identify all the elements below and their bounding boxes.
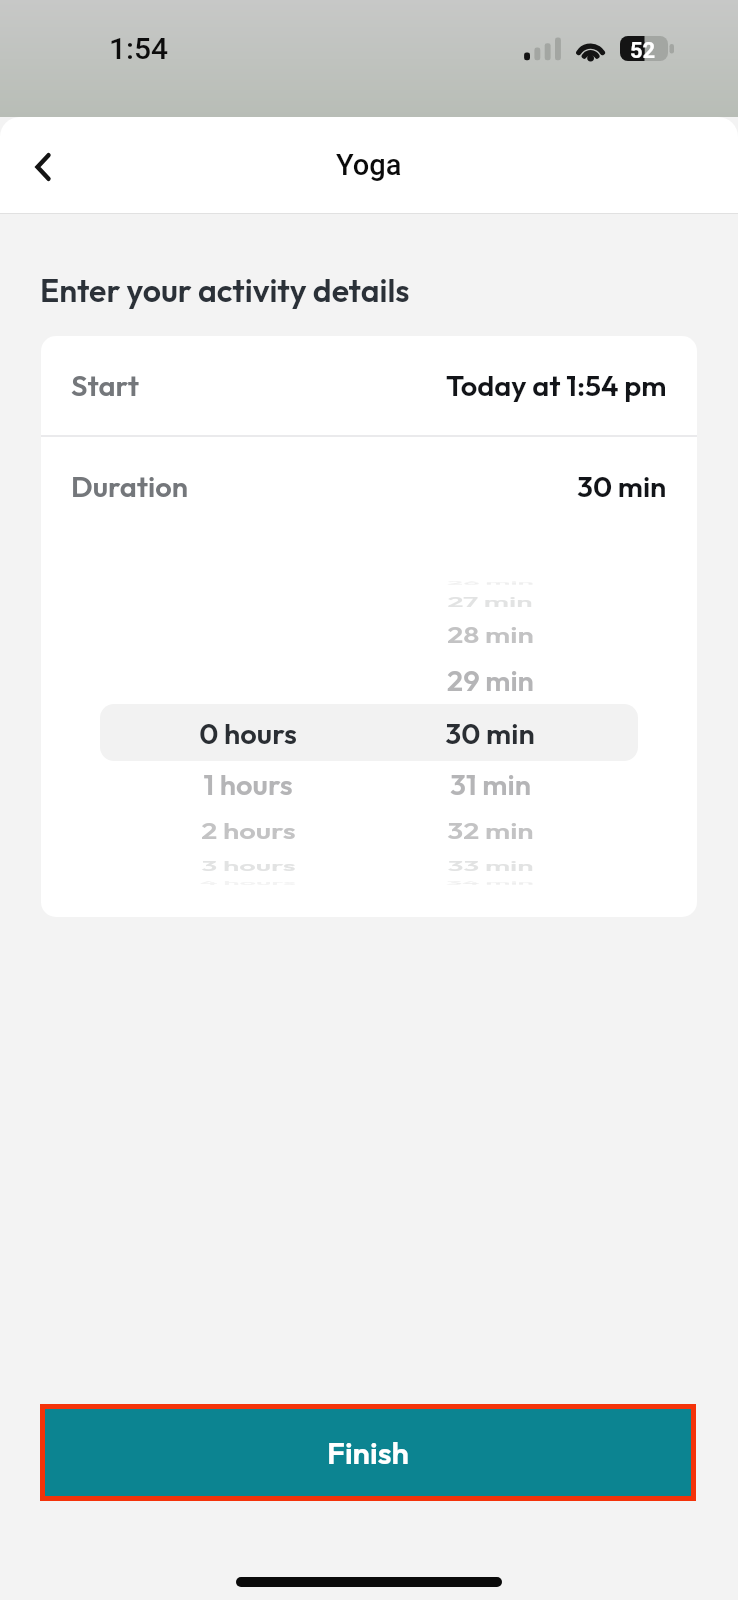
button[interactable]: 28 min	[360, 615, 620, 655]
staticText: Finish	[327, 1433, 409, 1472]
staticText: Today at 1:54 pm	[446, 367, 667, 404]
staticText: Enter your activity details	[40, 270, 410, 310]
staticText: 4 hours	[200, 880, 296, 886]
button[interactable]: 27 min	[360, 588, 620, 614]
button[interactable]: 1 hours	[118, 761, 378, 809]
staticText: 52	[630, 38, 656, 64]
staticText: 26 min	[447, 580, 534, 586]
button[interactable]: 31 min	[360, 761, 620, 809]
staticText: 3 hours	[201, 856, 296, 874]
staticText: 32 min	[447, 817, 534, 845]
staticText: 28 min	[447, 621, 534, 649]
staticText: 1:54	[109, 31, 169, 66]
button[interactable]: Back	[10, 134, 76, 200]
staticText: 29 min	[447, 664, 534, 699]
button[interactable]: 30 min	[360, 707, 620, 759]
button[interactable]: 35 min	[360, 881, 620, 884]
button[interactable]: 25 min	[360, 581, 620, 584]
button[interactable]: 33 min	[360, 852, 620, 878]
button[interactable]: Duration	[41, 437, 697, 536]
button[interactable]: 32 min	[360, 811, 620, 851]
staticText: 31 min	[450, 768, 531, 803]
staticText: Duration	[71, 468, 188, 505]
staticText: Yoga	[336, 148, 402, 182]
staticText: 25 min	[447, 582, 534, 584]
staticText: 33 min	[447, 856, 534, 874]
staticText: 27 min	[447, 592, 533, 610]
staticText: 34 min	[446, 880, 534, 886]
staticText: Start	[71, 367, 139, 404]
button[interactable]: Start	[41, 336, 697, 435]
staticText: 1 hours	[203, 768, 293, 803]
staticText: 0 hours	[199, 715, 297, 752]
staticText: 2 hours	[201, 817, 296, 845]
button[interactable]: 3 hours	[118, 852, 378, 878]
button[interactable]: 0 hours	[118, 707, 378, 759]
button[interactable]: 29 min	[360, 657, 620, 705]
button[interactable]: Finish	[40, 1404, 696, 1501]
staticText: 35 min	[447, 882, 534, 884]
staticText: 30 min	[445, 715, 535, 752]
button[interactable]: 2 hours	[118, 811, 378, 851]
staticText: 30 min	[577, 468, 667, 505]
